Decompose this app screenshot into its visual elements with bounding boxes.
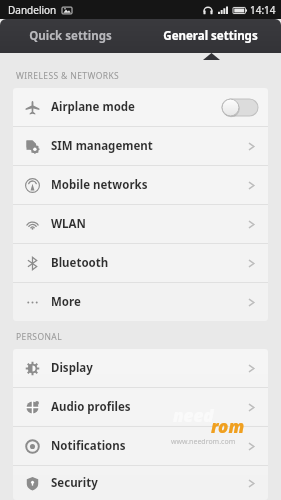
button[interactable]: Notifications: [13, 427, 268, 465]
button[interactable]: Mobile networks: [13, 166, 268, 204]
button[interactable]: Security: [13, 466, 268, 500]
staticText: 14:14: [250, 3, 276, 17]
button[interactable]: Airplane mode toggle: [222, 99, 258, 116]
staticText: Quick settings: [29, 28, 112, 44]
button[interactable]: General settings: [140, 19, 281, 53]
staticText: Notifications: [51, 438, 126, 454]
staticText: need: [173, 404, 214, 427]
button[interactable]: SIM management: [13, 127, 268, 165]
staticText: Security: [51, 475, 98, 491]
staticText: More: [51, 294, 81, 310]
button[interactable]: WLAN: [13, 205, 268, 243]
staticText: WIRELESS & NETWORKS: [16, 70, 120, 82]
staticText: Display: [51, 360, 93, 376]
staticText: Mobile networks: [51, 177, 148, 193]
button[interactable]: Quick settings: [0, 19, 140, 53]
staticText: SIM management: [51, 138, 153, 154]
staticText: Airplane mode: [51, 99, 135, 115]
staticText: www.needrom.com: [171, 437, 236, 447]
staticText: rom: [211, 415, 245, 438]
staticText: Audio profiles: [51, 399, 131, 415]
staticText: Bluetooth: [51, 255, 109, 271]
button[interactable]: More: [13, 283, 268, 321]
staticText: General settings: [163, 28, 258, 44]
button[interactable]: Bluetooth: [13, 244, 268, 282]
staticText: Dandelion: [8, 3, 57, 17]
button[interactable]: Display: [13, 349, 268, 387]
staticText: WLAN: [51, 216, 86, 232]
staticText: PERSONAL: [16, 331, 63, 343]
button[interactable]: Airplane mode: [13, 88, 268, 126]
button[interactable]: Audio profiles: [13, 388, 268, 426]
